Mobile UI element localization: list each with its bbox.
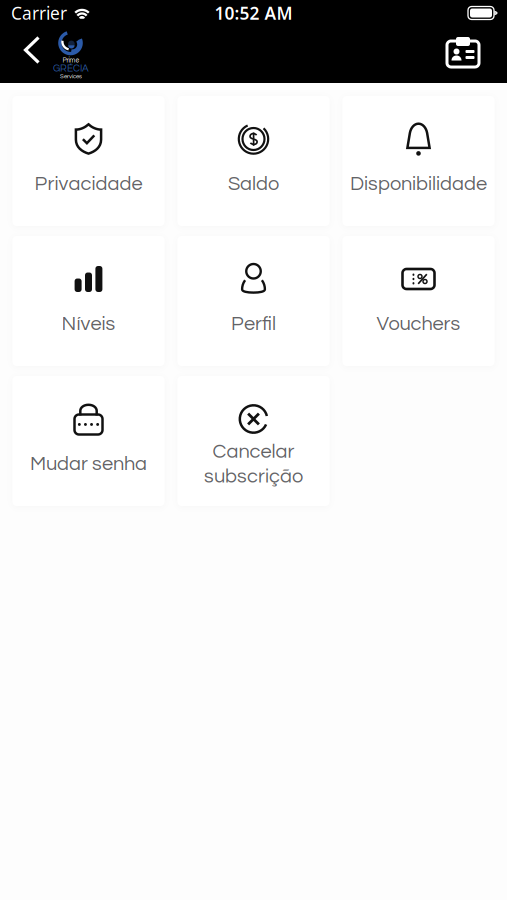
button[interactable]: Cancelar [177, 376, 329, 506]
staticText: Disponibilidade [350, 174, 487, 194]
button[interactable]: Perfil [177, 236, 329, 366]
staticText: Carrier [11, 1, 67, 24]
staticText: Perfil [231, 314, 276, 334]
button[interactable]: Saldo [177, 96, 329, 226]
button[interactable]: Back [13, 26, 51, 83]
button[interactable]: Privacidade [12, 96, 164, 226]
staticText: Services [60, 73, 82, 80]
staticText: Saldo [228, 174, 279, 194]
button[interactable]: Níveis [12, 236, 164, 366]
staticText: Prime [62, 57, 79, 64]
staticText: Níveis [61, 314, 115, 334]
staticText: GRÉCIA [53, 63, 89, 74]
staticText: Cancelar [212, 441, 294, 462]
staticText: 10:52 AM [214, 1, 292, 24]
button[interactable]: Membership card [435, 26, 491, 83]
button[interactable]: Vouchers [342, 236, 494, 366]
staticText: Vouchers [376, 314, 460, 334]
staticText: Mudar senha [30, 454, 147, 474]
button[interactable]: Disponibilidade [342, 96, 494, 226]
staticText: Privacidade [34, 174, 142, 194]
staticText: subscrição [204, 466, 303, 487]
button[interactable]: Mudar senha [12, 376, 164, 506]
